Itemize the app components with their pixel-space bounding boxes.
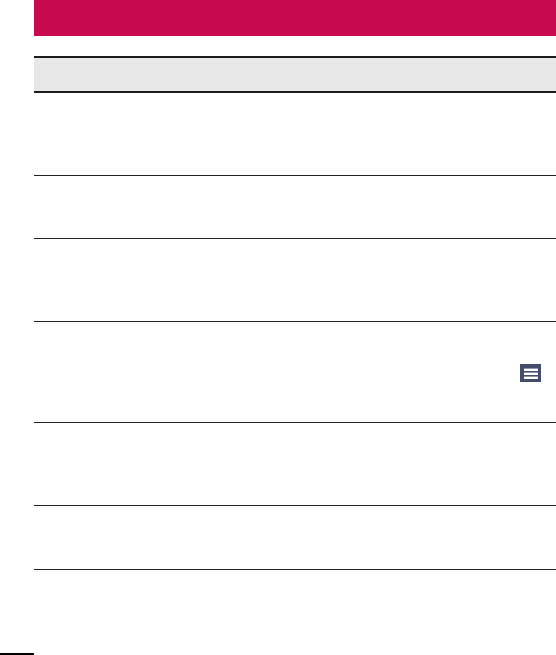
button[interactable]: Row 4 — [34, 322, 556, 422]
button[interactable]: List view — [520, 364, 541, 382]
